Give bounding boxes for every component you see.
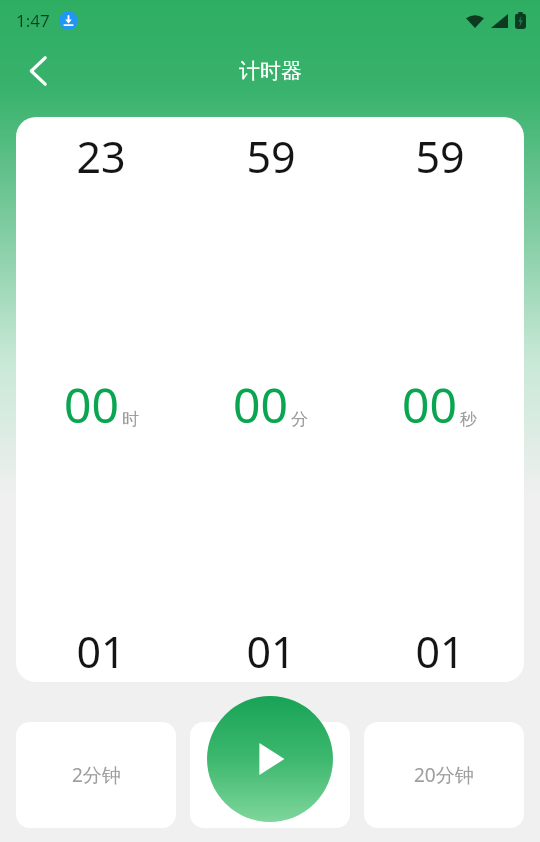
staticText: 00 [64,372,119,437]
button[interactable]: 00 [186,372,355,437]
button[interactable]: Back [10,43,66,99]
staticText: 01 [76,622,126,681]
staticText: 2分钟 [72,762,121,788]
button[interactable]: 59 [186,127,355,186]
button[interactable]: 23 [16,127,186,186]
staticText: 01 [246,622,296,681]
staticText: 计时器 [239,58,302,84]
staticText: 00 [402,372,457,437]
staticText: 59 [246,127,296,186]
button[interactable]: 10分钟 [190,722,350,828]
staticText: 00 [233,372,288,437]
staticText: 59 [415,127,465,186]
staticText: 10分钟 [240,762,300,788]
button[interactable]: 01 [355,622,524,681]
staticText: 分 [291,409,308,430]
button[interactable]: 20分钟 [364,722,524,828]
staticText: 秒 [460,409,477,430]
button[interactable]: 01 [16,622,186,681]
button[interactable]: 00 [355,372,524,437]
button[interactable]: Start timer [207,696,333,822]
staticText: 01 [415,622,465,681]
staticText: 1:47 [16,9,50,32]
staticText: 20分钟 [414,762,474,788]
staticText: 23 [76,127,126,186]
staticText: 时 [122,409,139,430]
button[interactable]: 01 [186,622,355,681]
button[interactable]: 00 [16,372,186,437]
button[interactable]: 59 [355,127,524,186]
button[interactable]: 2分钟 [16,722,176,828]
